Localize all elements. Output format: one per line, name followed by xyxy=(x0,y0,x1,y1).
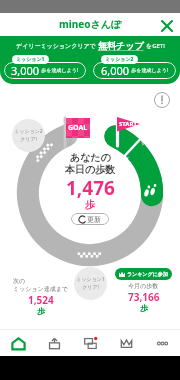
button[interactable]: 3,000 xyxy=(4,55,86,79)
button[interactable]: Info xyxy=(151,89,173,111)
staticText: 歩 xyxy=(140,303,148,313)
staticText: ミッション2 xyxy=(105,56,134,63)
button[interactable]: More xyxy=(144,330,180,356)
staticText: 3,000 xyxy=(11,63,40,78)
staticText: 歩 xyxy=(37,306,45,316)
button[interactable]: 6,000 xyxy=(93,55,176,79)
staticText: 無料チップ xyxy=(98,40,144,51)
staticText: ランキングに参加 xyxy=(127,271,168,277)
staticText: 歩を達成しよう! xyxy=(40,67,79,74)
staticText: ミッション1 クリア! xyxy=(76,276,105,291)
staticText: 1,476 xyxy=(66,175,115,201)
staticText: をGET! xyxy=(146,42,165,50)
button[interactable]: 更新 xyxy=(71,213,109,225)
button[interactable]: Home xyxy=(0,330,36,356)
staticText: ミッション1 xyxy=(16,56,45,63)
button[interactable]: Close xyxy=(157,13,180,36)
staticText: デイリーミッションクリアで xyxy=(16,42,96,50)
staticText: 本日の歩数 xyxy=(65,163,116,176)
button[interactable]: ランキングに参加 xyxy=(115,268,172,280)
staticText: 更新 xyxy=(87,215,101,224)
staticText: 1,524 xyxy=(28,293,54,307)
staticText: ミッション達成まで xyxy=(13,285,68,293)
staticText: 73,166 xyxy=(128,290,160,304)
staticText: 歩 xyxy=(85,198,95,211)
staticText: 今月の歩数 xyxy=(128,282,159,290)
staticText: GOAL xyxy=(68,123,88,133)
button[interactable]: Messages xyxy=(72,330,108,356)
staticText: 次の xyxy=(13,277,26,285)
staticText: あなたの xyxy=(70,151,111,164)
button[interactable]: Coupon xyxy=(36,330,72,356)
staticText: 6,000 xyxy=(101,63,130,78)
staticText: ミッション2 クリア! xyxy=(14,128,43,143)
staticText: mineoさんぽ xyxy=(59,17,122,31)
staticText: 歩を達成しよう! xyxy=(130,67,169,74)
staticText: START xyxy=(119,120,137,128)
button[interactable]: Ranking xyxy=(108,330,144,356)
